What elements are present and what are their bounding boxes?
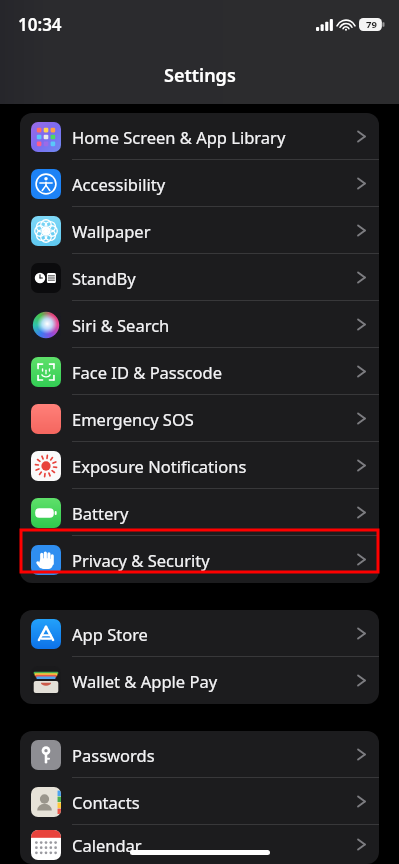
- staticText: Calendar: [72, 834, 142, 856]
- button[interactable]: Privacy & Security: [20, 536, 379, 583]
- button[interactable]: App Store: [20, 610, 379, 657]
- staticText: 10:34: [18, 13, 62, 36]
- button[interactable]: Wallpaper: [20, 207, 379, 254]
- button[interactable]: Exposure Notifications: [20, 442, 379, 489]
- button[interactable]: Emergency SOS: [20, 395, 379, 442]
- staticText: Settings: [164, 63, 236, 88]
- staticText: Emergency SOS: [72, 408, 194, 430]
- staticText: Home Screen & App Library: [72, 126, 286, 148]
- button[interactable]: Calendar: [20, 825, 379, 864]
- staticText: Contacts: [72, 791, 140, 813]
- button[interactable]: Home Screen & App Library: [20, 113, 379, 160]
- button[interactable]: Contacts: [20, 778, 379, 825]
- staticText: Wallpaper: [72, 220, 151, 242]
- staticText: Exposure Notifications: [72, 455, 247, 477]
- staticText: Siri & Search: [72, 314, 170, 336]
- staticText: Battery: [72, 502, 129, 524]
- button[interactable]: StandBy: [20, 254, 379, 301]
- staticText: StandBy: [72, 267, 136, 289]
- other: Home indicator: [130, 850, 270, 855]
- button[interactable]: Accessibility: [20, 160, 379, 207]
- button[interactable]: Wallet & Apple Pay: [20, 657, 379, 704]
- staticText: Wallet & Apple Pay: [72, 670, 218, 692]
- button[interactable]: Battery: [20, 489, 379, 536]
- staticText: App Store: [72, 623, 148, 645]
- staticText: Accessibility: [72, 173, 166, 195]
- staticText: Privacy & Security: [72, 549, 210, 571]
- staticText: Face ID & Passcode: [72, 361, 223, 383]
- button[interactable]: Siri & Search: [20, 301, 379, 348]
- staticText: 79: [366, 18, 377, 31]
- staticText: Passwords: [72, 744, 155, 766]
- button[interactable]: Face ID & Passcode: [20, 348, 379, 395]
- button[interactable]: Passwords: [20, 731, 379, 778]
